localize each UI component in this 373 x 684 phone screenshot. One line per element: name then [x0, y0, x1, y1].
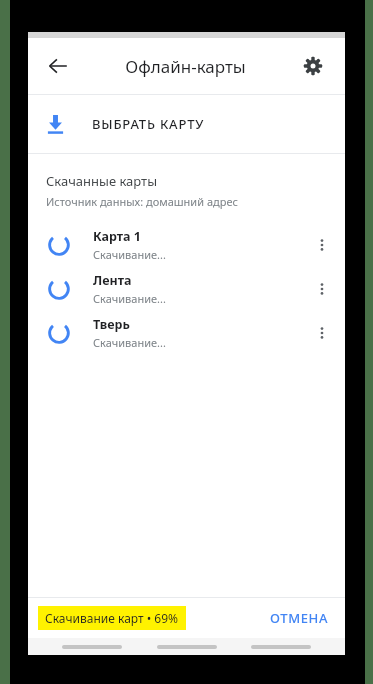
- button[interactable]: Back: [38, 46, 78, 86]
- staticText: Источник данных: домашний адрес: [46, 194, 238, 209]
- button[interactable]: Navigation: [251, 645, 311, 649]
- button[interactable]: More options: [305, 228, 339, 262]
- staticText: Скачивание карт • 69%: [45, 610, 179, 626]
- staticText: ВЫБРАТЬ КАРТУ: [92, 115, 205, 133]
- button[interactable]: Navigation: [157, 645, 217, 649]
- button[interactable]: Settings: [293, 46, 333, 86]
- button[interactable]: Карта 1: [28, 223, 345, 267]
- button[interactable]: More options: [305, 272, 339, 306]
- staticText: Скачивание...: [93, 291, 166, 306]
- staticText: Скачанные карты: [46, 172, 158, 190]
- button[interactable]: ВЫБРАТЬ КАРТУ: [28, 95, 345, 153]
- staticText: ОТМЕНА: [270, 609, 329, 627]
- staticText: Лента: [93, 272, 132, 289]
- button[interactable]: ОТМЕНА: [254, 601, 345, 635]
- staticText: Карта 1: [93, 228, 141, 245]
- staticText: Офлайн-карты: [78, 55, 293, 78]
- button[interactable]: Navigation: [62, 645, 122, 649]
- button[interactable]: Лента: [28, 267, 345, 311]
- button[interactable]: Тверь: [28, 311, 345, 355]
- staticText: Тверь: [93, 316, 130, 333]
- button[interactable]: More options: [305, 316, 339, 350]
- staticText: Скачивание...: [93, 335, 166, 350]
- staticText: Скачивание...: [93, 247, 166, 262]
